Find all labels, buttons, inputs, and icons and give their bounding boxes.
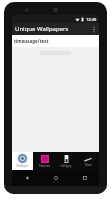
- button[interactable]: Back: [12, 170, 41, 186]
- button[interactable]: Category: [55, 152, 77, 170]
- button[interactable]: Home: [41, 170, 70, 186]
- staticText: timeusage/test: [14, 38, 49, 44]
- staticText: Wallpaper: [16, 164, 29, 168]
- button[interactable]: More options: [90, 23, 98, 35]
- button[interactable]: timeusage/test: [12, 35, 99, 47]
- staticText: Featured: [39, 164, 50, 168]
- staticText: Category: [60, 164, 72, 168]
- staticText: 12:30: [86, 17, 97, 22]
- button[interactable]: Featured: [33, 152, 55, 170]
- staticText: Unique Wallpapers: [15, 25, 69, 33]
- button[interactable]: Recent apps: [70, 170, 99, 186]
- staticText: More: [85, 163, 92, 167]
- button[interactable]: More: [77, 152, 99, 170]
- button[interactable]: Wallpaper: [12, 152, 33, 170]
